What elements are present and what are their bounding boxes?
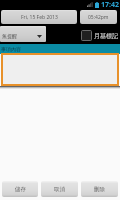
staticText: 刪除 xyxy=(94,186,105,193)
button[interactable]: 儲存 xyxy=(2,181,38,197)
button[interactable]: 取消 xyxy=(41,181,78,197)
staticText: 17:42 xyxy=(101,0,119,9)
staticText: 儲存 xyxy=(15,186,26,193)
staticText: 無提醒 xyxy=(2,33,17,39)
button[interactable]: 月基標記 xyxy=(81,29,118,42)
button[interactable]: 無提醒 xyxy=(0,26,46,42)
button[interactable]: Fri, 15 Feb 2013 xyxy=(1,10,77,24)
staticText: 事項內容 xyxy=(1,46,21,52)
button[interactable]: 刪除 xyxy=(81,181,118,197)
button[interactable] xyxy=(1,53,119,86)
button[interactable]: 05:42pm xyxy=(80,10,117,24)
staticText: 05:42pm xyxy=(88,14,109,21)
staticText: 月基標記 xyxy=(94,32,118,40)
staticText: Fri, 15 Feb 2013 xyxy=(21,14,58,21)
staticText: 取消 xyxy=(54,186,65,193)
